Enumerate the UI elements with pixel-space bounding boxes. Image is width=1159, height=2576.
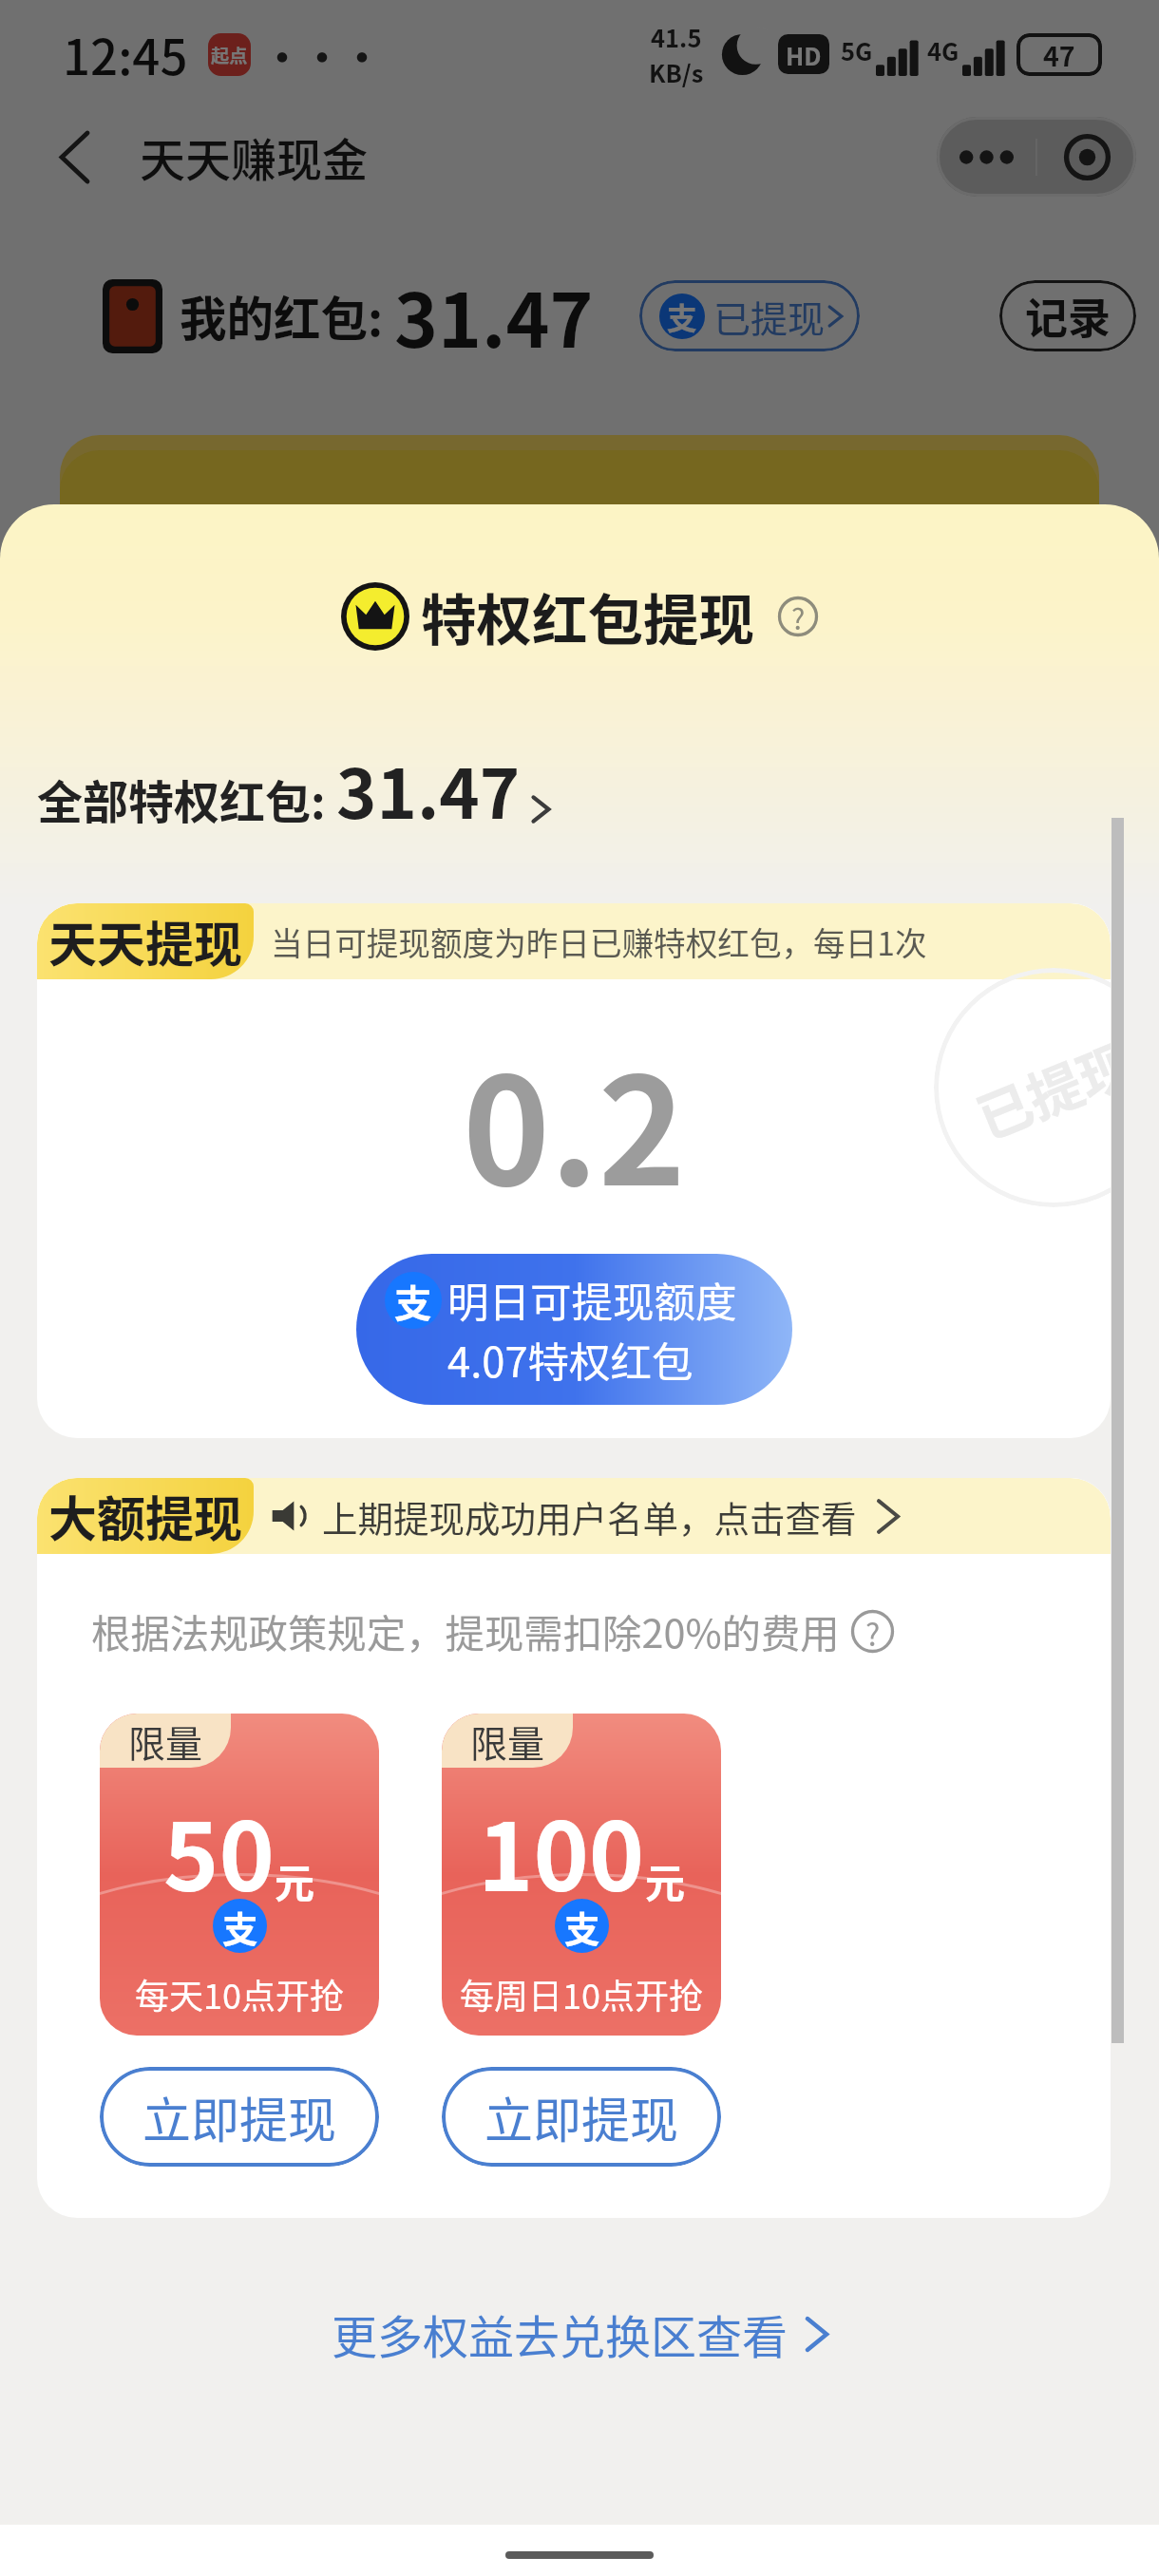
button[interactable]: Back: [28, 111, 120, 202]
staticText: 支: [667, 294, 697, 338]
staticText: 当日可提现额度为昨日已赚特权红包，每日1次: [271, 919, 927, 965]
staticText: 我的红包:: [180, 282, 394, 350]
button[interactable]: 立即提现: [442, 2067, 721, 2167]
staticText: ···: [262, 26, 383, 84]
staticText: 大额提现: [48, 1481, 243, 1551]
staticText: 元: [275, 1851, 315, 1909]
button[interactable]: 支: [639, 280, 860, 351]
staticText: 记录: [1025, 285, 1111, 347]
staticText: 50: [163, 1782, 275, 1918]
staticText: HD: [786, 37, 822, 72]
staticText: 4.07特权红包: [447, 1330, 693, 1390]
staticText: 全部特权红包:: [37, 766, 336, 832]
staticText: 更多权益去兑换区查看: [332, 2301, 788, 2367]
staticText: 立即提现: [142, 2082, 337, 2152]
button[interactable]: 限量: [100, 1714, 379, 2036]
staticText: 4G: [927, 32, 959, 67]
staticText: 31.47: [394, 262, 594, 369]
button[interactable]: 限量: [442, 1714, 721, 2036]
staticText: 每周日10点开抢: [460, 1969, 703, 2018]
staticText: 限量: [128, 1714, 203, 1768]
staticText: 0.2: [463, 1013, 686, 1228]
staticText: 立即提现: [484, 2082, 679, 2152]
staticText: 支: [222, 1901, 258, 1952]
staticText: ?: [791, 597, 806, 636]
staticText: 限量: [470, 1714, 545, 1768]
staticText: 特权红包提现: [421, 576, 755, 656]
staticText: 元: [645, 1851, 686, 1909]
staticText: 47: [1043, 35, 1075, 74]
staticText: 已提现: [713, 290, 826, 343]
staticText: 天天赚现金: [140, 123, 369, 190]
staticText: 5G: [841, 32, 873, 67]
button[interactable]: Close mini program: [1037, 117, 1136, 197]
button[interactable]: 更多权益去兑换区查看: [0, 2301, 1159, 2367]
staticText: 天天提现: [48, 906, 243, 976]
staticText: 31.47: [336, 739, 521, 838]
staticText: 12:45: [63, 19, 188, 89]
staticText: 支: [564, 1901, 600, 1952]
staticText: 100: [478, 1782, 645, 1918]
staticText: 已提现: [964, 1021, 1111, 1155]
staticText: 支: [394, 1274, 432, 1328]
staticText: 根据法规政策规定，提现需扣除20%的费用: [91, 1602, 840, 1659]
button[interactable]: More options: [937, 117, 1035, 197]
button[interactable]: 支: [356, 1254, 792, 1405]
staticText: 上期提现成功用户名单，点击查看: [322, 1490, 857, 1542]
staticText: ?: [865, 1610, 881, 1653]
button[interactable]: 记录: [999, 280, 1136, 351]
staticText: 每天10点开抢: [135, 1969, 344, 2018]
staticText: 明日可提现额度: [447, 1270, 737, 1330]
staticText: 起点: [211, 42, 248, 68]
staticText: KB/s: [649, 54, 704, 89]
staticText: 41.5: [651, 19, 702, 54]
button[interactable]: 立即提现: [100, 2067, 379, 2167]
